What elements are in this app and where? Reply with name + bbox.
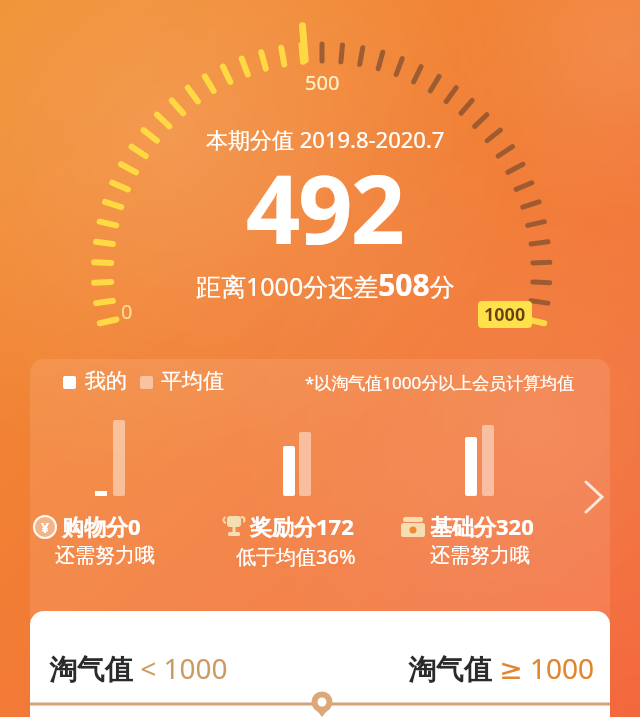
button[interactable]: ¥ bbox=[33, 515, 57, 539]
staticText: 还需努力哦 bbox=[55, 543, 155, 568]
staticText: 500 bbox=[305, 69, 340, 96]
button[interactable]: 淘气值 ≥ 1000 bbox=[320, 649, 610, 687]
staticText: ¥ bbox=[41, 518, 50, 537]
button[interactable]: 淘气值 < 1000 bbox=[30, 649, 320, 687]
staticText: 平均值 bbox=[161, 368, 224, 394]
staticText: 奖励分172 bbox=[250, 511, 354, 541]
staticText: 购物分0 bbox=[62, 511, 141, 541]
staticText: 1000 bbox=[484, 302, 526, 327]
button[interactable] bbox=[578, 474, 610, 520]
staticText: 淘气值 < 1000 bbox=[49, 649, 228, 687]
staticText: *以淘气值1000分以上会员计算均值 bbox=[305, 371, 575, 394]
staticText: 低于均值36% bbox=[236, 543, 356, 570]
staticText: 基础分320 bbox=[430, 511, 534, 541]
staticText: 淘气值 ≥ 1000 bbox=[408, 649, 595, 687]
staticText: 还需努力哦 bbox=[430, 543, 530, 568]
staticText: 0 bbox=[121, 298, 133, 325]
staticText: 距离1000分还差508分 bbox=[196, 264, 455, 305]
staticText: 我的 bbox=[85, 368, 127, 394]
staticText: 492 bbox=[246, 142, 404, 271]
staticText: 本期分值 2019.8-2020.7 bbox=[206, 124, 445, 154]
